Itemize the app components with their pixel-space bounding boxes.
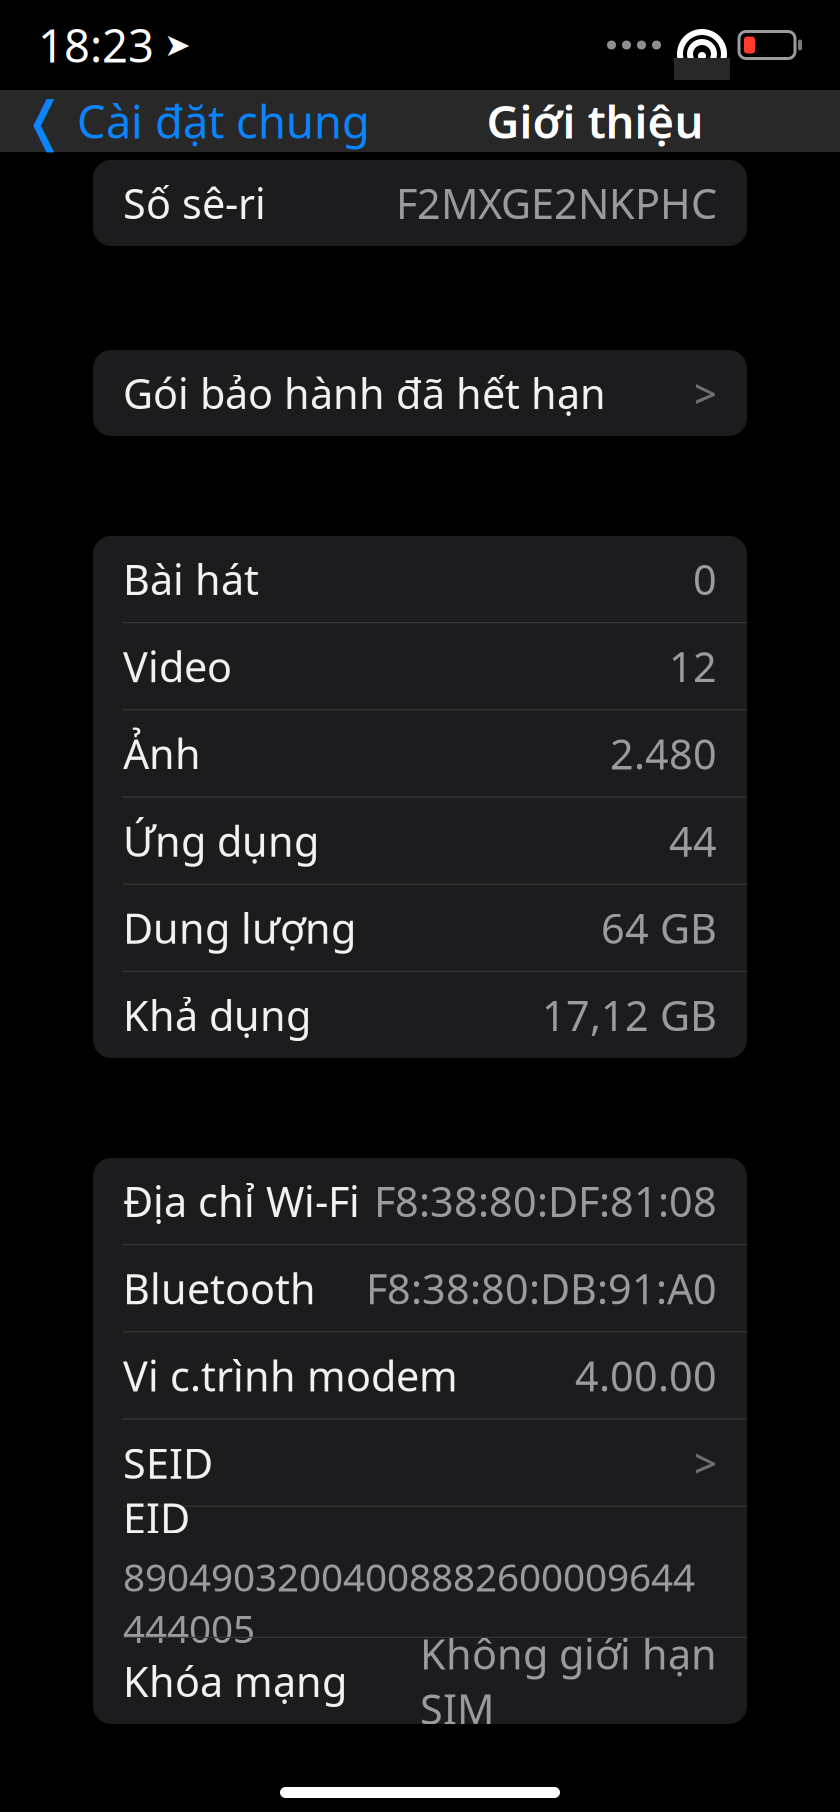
staticText: Giới thiệu xyxy=(486,91,703,151)
staticText: Khóa mạng xyxy=(123,1654,347,1708)
staticText: Địa chỉ Wi-Fi xyxy=(123,1174,360,1228)
staticText: 0 xyxy=(693,552,717,606)
staticText: > xyxy=(694,1436,717,1489)
staticText: EID xyxy=(123,1490,190,1545)
staticText: SEID xyxy=(123,1435,213,1490)
staticText: 4.00.00 xyxy=(575,1348,717,1403)
staticText: 17,12 GB xyxy=(542,988,717,1042)
staticText: Ứng dụng xyxy=(123,813,319,868)
staticText: Số sê-ri xyxy=(123,176,266,230)
staticText: Dung lượng xyxy=(123,900,356,955)
button[interactable]: SEID xyxy=(93,1420,747,1506)
staticText: ❬ xyxy=(22,91,67,151)
staticText: 18:23 xyxy=(38,15,154,75)
staticText: Gói bảo hành đã hết hạn xyxy=(123,366,606,420)
staticText: ➤ xyxy=(164,27,191,63)
staticText: Video xyxy=(123,639,232,694)
staticText: 64 GB xyxy=(601,900,717,955)
staticText: > xyxy=(694,366,717,419)
staticText: Khả dụng xyxy=(123,988,311,1042)
staticText: Ảnh xyxy=(123,726,201,781)
staticText: F2MXGE2NKPHC xyxy=(396,176,717,230)
staticText: Vi c.trình modem xyxy=(123,1348,458,1403)
staticText: Không giới hạn SIM xyxy=(420,1626,717,1736)
staticText: Bluetooth xyxy=(123,1261,316,1316)
staticText: 89049032004008882600009644444005 xyxy=(123,1551,695,1654)
button[interactable]: ❬ xyxy=(0,83,370,159)
button[interactable]: Gói bảo hành đã hết hạn xyxy=(93,350,747,436)
staticText: 44 xyxy=(669,813,717,868)
staticText: Bài hát xyxy=(123,552,259,606)
staticText: F8:38:80:DB:91:A0 xyxy=(366,1261,717,1316)
staticText: F8:38:80:DF:81:08 xyxy=(374,1174,717,1228)
staticText: Cài đặt chung xyxy=(77,91,370,151)
staticText: 12 xyxy=(669,639,717,694)
staticText: 2.480 xyxy=(610,726,717,781)
